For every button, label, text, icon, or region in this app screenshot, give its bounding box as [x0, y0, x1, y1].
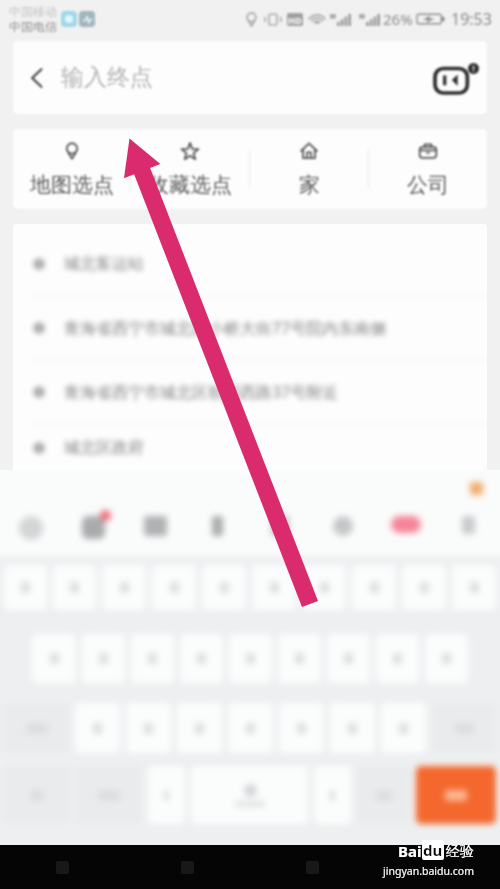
staticText: 青海省西宁市城北区朝阳西路37号附近 — [64, 381, 339, 403]
button[interactable] — [4, 565, 47, 610]
button[interactable] — [352, 565, 396, 610]
staticText: 26% — [383, 9, 413, 29]
button[interactable] — [381, 703, 426, 753]
button[interactable] — [102, 565, 146, 610]
button[interactable] — [177, 703, 222, 753]
button[interactable]: 城北客运站 — [13, 232, 487, 295]
staticText: 中国电信 — [9, 19, 57, 34]
staticText: 城北区政府 — [64, 438, 144, 458]
staticText: Bai — [398, 841, 422, 861]
staticText: 输入终点 — [61, 63, 153, 92]
button[interactable] — [32, 634, 76, 683]
button[interactable]: 空格 — [191, 766, 308, 824]
staticText: 城北客运站 — [64, 254, 144, 274]
staticText: 中国移动 — [9, 4, 57, 19]
button[interactable]: 家 — [250, 129, 368, 209]
button[interactable]: 系统导航 — [0, 845, 125, 889]
staticText: HD — [288, 14, 302, 26]
staticText: 家 — [299, 172, 320, 198]
staticText: 地图选点 — [30, 172, 114, 198]
button[interactable] — [278, 634, 321, 683]
button[interactable]: 输入法工具 — [311, 516, 374, 556]
button[interactable]: 输入法工具 — [374, 516, 437, 556]
staticText: 收藏选点 — [148, 172, 232, 198]
button[interactable] — [53, 565, 96, 610]
button[interactable]: 输入法工具 — [62, 516, 124, 556]
button[interactable]: 城北区政府 — [13, 424, 487, 472]
button[interactable] — [228, 703, 273, 753]
button[interactable]: 输入法工具 — [0, 516, 62, 556]
button[interactable]: 公司 — [369, 129, 487, 209]
staticText: du — [423, 840, 443, 860]
button[interactable] — [330, 703, 375, 753]
button[interactable] — [180, 634, 223, 683]
button[interactable] — [229, 634, 272, 683]
staticText: 经验 — [446, 843, 474, 861]
button[interactable] — [82, 634, 125, 683]
button[interactable]: 系统导航 — [125, 845, 250, 889]
button[interactable]: 语音输入 — [433, 54, 481, 102]
button[interactable]: 收藏选点 — [131, 129, 249, 209]
button[interactable] — [252, 565, 296, 610]
button[interactable] — [402, 565, 446, 610]
button[interactable]: 地图选点 — [13, 129, 130, 209]
button[interactable] — [302, 565, 346, 610]
button[interactable]: 青海省西宁市城北区朝阳西路37号附近 — [13, 360, 487, 423]
button[interactable] — [376, 634, 419, 683]
button[interactable]: 输入法工具 — [248, 516, 311, 556]
button[interactable] — [452, 565, 496, 610]
button[interactable] — [202, 565, 246, 610]
button[interactable] — [131, 634, 174, 683]
button[interactable]: 回车 — [416, 766, 496, 824]
button[interactable]: 输入法工具 — [124, 516, 186, 556]
staticText: 青海省西宁市城北区小桥大街77号院内东南侧 — [64, 317, 387, 339]
staticText: 19:53 — [451, 8, 492, 30]
button[interactable]: 系统导航 — [250, 845, 375, 889]
staticText: 公司 — [407, 172, 449, 198]
button[interactable] — [327, 634, 370, 683]
button[interactable] — [75, 703, 120, 753]
button[interactable] — [279, 703, 324, 753]
button[interactable]: 青海省西宁市城北区小桥大街77号院内东南侧 — [13, 296, 487, 359]
button[interactable]: 输入法工具 — [186, 516, 248, 556]
button[interactable]: 返回 — [13, 54, 61, 102]
button[interactable]: 输入法工具 — [437, 516, 500, 556]
staticText: jingyan.baidu.com — [383, 864, 474, 878]
button[interactable] — [152, 565, 196, 610]
button[interactable] — [126, 703, 171, 753]
button[interactable] — [425, 634, 468, 683]
